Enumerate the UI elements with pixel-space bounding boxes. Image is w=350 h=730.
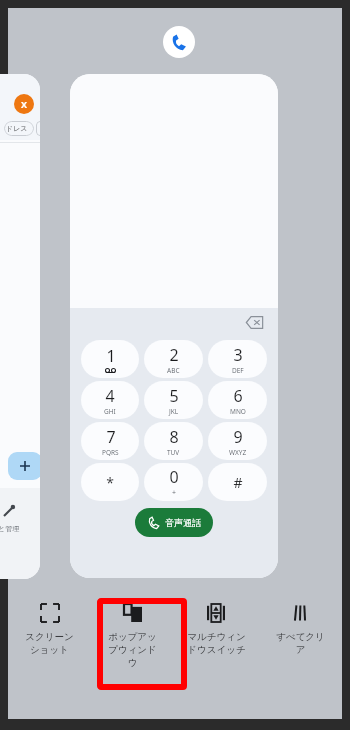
staticText: 3 (233, 344, 243, 366)
staticText: 音声通話 (165, 517, 201, 528)
staticText: WXYZ (229, 448, 247, 457)
button[interactable]: スクリーン ショット (8, 590, 91, 690)
staticText: TUV (167, 448, 180, 457)
button[interactable]: ポップアッ プウィンド ウ (91, 590, 174, 690)
staticText: * (106, 473, 114, 492)
staticText: 5 (169, 385, 179, 407)
button[interactable]: 音声通話 (135, 508, 213, 537)
staticText: ABC (167, 366, 180, 375)
staticText: GHI (104, 407, 116, 416)
button[interactable]: X (0, 74, 40, 579)
staticText: + (172, 488, 177, 498)
button[interactable]: 1 (81, 340, 139, 378)
staticText: スクリーン ショット (25, 631, 74, 656)
staticText: 4 (105, 385, 115, 407)
staticText: すべてクリ ア (276, 631, 325, 656)
button[interactable]: 7 (81, 422, 139, 460)
button[interactable]: 5 (144, 381, 203, 419)
button[interactable]: 9 (208, 422, 267, 460)
staticText: # (233, 473, 243, 492)
staticText: 6 (233, 385, 243, 407)
staticText: 1 (106, 345, 116, 367)
button[interactable]: 4 (81, 381, 139, 419)
button[interactable]: * (81, 463, 139, 501)
button[interactable]: 6 (208, 381, 267, 419)
staticText: 9 (233, 426, 243, 448)
button[interactable]: 2 (144, 340, 203, 378)
staticText: マルチウィン ドウスイッチ (187, 631, 246, 656)
button[interactable]: Phone app (163, 26, 195, 58)
staticText: JKL (169, 407, 179, 416)
staticText: 0 (169, 466, 179, 488)
button[interactable]: すべてクリ ア (258, 590, 342, 690)
button[interactable]: 3 (208, 340, 267, 378)
button[interactable]: Add (8, 452, 40, 480)
button[interactable]: マルチウィン ドウスイッチ (174, 590, 258, 690)
button[interactable]: # (208, 463, 267, 501)
staticText: DEF (232, 366, 244, 375)
button[interactable]: 0 (144, 463, 203, 501)
staticText: PQRS (102, 448, 119, 457)
button[interactable]: 8 (144, 422, 203, 460)
button[interactable]: Backspace (243, 311, 265, 333)
staticText: と管理 (0, 524, 20, 533)
staticText: 2 (169, 344, 179, 366)
staticText: 7 (106, 426, 116, 448)
staticText: X (21, 98, 28, 110)
staticText: ドレス (6, 124, 28, 133)
staticText: MNO (230, 407, 246, 416)
staticText: ポップアッ プウィンド ウ (108, 631, 157, 669)
staticText: 8 (169, 426, 179, 448)
